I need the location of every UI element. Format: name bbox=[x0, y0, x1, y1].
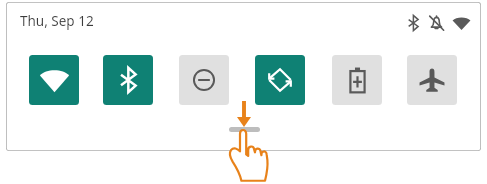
button[interactable]: tile1 bbox=[103, 55, 153, 105]
button[interactable]: tile2 bbox=[179, 55, 229, 105]
staticText: Thu, Sep 12 bbox=[20, 12, 94, 30]
button[interactable]: tile3 bbox=[255, 55, 305, 105]
button[interactable]: tile5 bbox=[407, 55, 457, 105]
button[interactable]: tile4 bbox=[332, 55, 382, 105]
button[interactable]: tile0 bbox=[29, 55, 79, 105]
